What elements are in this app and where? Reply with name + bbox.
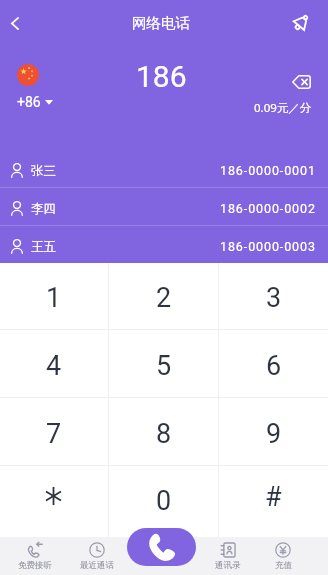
button[interactable]: 7 — [0, 398, 108, 465]
staticText: 186 — [136, 59, 187, 94]
button[interactable]: 通讯录 — [198, 537, 258, 575]
button[interactable]: 6 — [219, 330, 328, 397]
button[interactable]: 8 — [109, 398, 218, 465]
staticText: +86 — [17, 94, 41, 110]
button[interactable]: 张三 — [0, 150, 328, 187]
staticText: 5 — [156, 350, 172, 382]
staticText: 4 — [46, 350, 62, 382]
staticText: 186-0000-0003 — [220, 239, 316, 254]
staticText: 充值 — [275, 560, 292, 571]
button[interactable]: 5 — [109, 330, 218, 397]
staticText: 最近通话 — [80, 560, 114, 571]
button[interactable]: Backspace — [286, 67, 316, 97]
button[interactable]: 0 — [109, 466, 218, 537]
staticText: 0.09元／分 — [254, 100, 312, 116]
button[interactable]: 2 — [109, 263, 218, 329]
staticText: 通讯录 — [215, 560, 241, 571]
button[interactable]: 免费接听 — [5, 537, 65, 575]
button[interactable]: 李四 — [0, 188, 328, 225]
staticText: 7 — [46, 418, 62, 450]
staticText: 8 — [156, 418, 172, 450]
staticText: 张三 — [31, 163, 56, 179]
button[interactable]: 最近通话 — [67, 537, 127, 575]
button[interactable]: Back — [0, 0, 30, 46]
staticText: 6 — [266, 350, 282, 382]
staticText: 王五 — [31, 239, 56, 255]
button[interactable]: # — [219, 466, 328, 537]
button[interactable] — [0, 466, 108, 537]
staticText: 1 — [46, 282, 62, 314]
staticText: # — [265, 481, 282, 513]
button[interactable]: Notifications — [286, 7, 316, 37]
button[interactable]: 王五 — [0, 226, 328, 263]
staticText: 9 — [266, 418, 282, 450]
button[interactable]: Call — [127, 528, 196, 566]
staticText: 186-0000-0001 — [220, 163, 316, 178]
staticText: 李四 — [31, 201, 56, 217]
staticText: 网络电话 — [132, 14, 190, 32]
staticText: 3 — [266, 282, 282, 314]
staticText: 2 — [156, 282, 172, 314]
staticText: 0 — [156, 485, 172, 517]
button[interactable]: 1 — [0, 263, 108, 329]
button[interactable]: 4 — [0, 330, 108, 397]
button[interactable]: 充值 — [253, 537, 313, 575]
button[interactable]: 9 — [219, 398, 328, 465]
button[interactable]: 3 — [219, 263, 328, 329]
staticText: 186-0000-0002 — [220, 201, 316, 216]
button[interactable]: +86 — [13, 93, 57, 111]
staticText: 免费接听 — [18, 560, 52, 571]
